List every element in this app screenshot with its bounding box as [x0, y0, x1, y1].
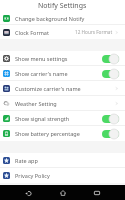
staticText: Weather Setting: [15, 100, 57, 107]
button[interactable]: Clock Format: [0, 25, 125, 39]
button[interactable]: Toggle: [102, 69, 119, 79]
staticText: 12 Hours Format: [75, 29, 113, 35]
button[interactable]: Toggle: [102, 54, 119, 64]
staticText: Customize carrier's name: [15, 85, 81, 92]
button[interactable]: Rate app: [0, 153, 125, 168]
staticText: Clock Format: [15, 29, 49, 36]
staticText: Change background Notify: [15, 15, 85, 22]
staticText: Show carrier's name: [15, 70, 68, 77]
staticText: Show battery percentage: [15, 130, 80, 137]
button[interactable]: Customize carrier's name: [0, 81, 125, 96]
button[interactable]: Weather Setting: [0, 96, 125, 111]
button[interactable]: Change background Notify: [0, 11, 125, 25]
staticText: Show menu settings: [15, 55, 68, 62]
button[interactable]: Toggle: [102, 129, 119, 139]
button[interactable]: Show menu settings: [0, 51, 125, 66]
button[interactable]: Privacy Policy: [0, 168, 125, 183]
button[interactable]: Home: [56, 186, 70, 200]
staticText: Notify Settings: [38, 1, 87, 11]
staticText: Rate app: [15, 157, 38, 164]
button[interactable]: Recents: [90, 186, 104, 200]
staticText: Show signal strength: [15, 115, 70, 122]
button[interactable]: Show signal strength: [0, 111, 125, 126]
button[interactable]: Back: [21, 186, 35, 200]
button[interactable]: Show battery percentage: [0, 126, 125, 141]
button[interactable]: Show carrier's name: [0, 66, 125, 81]
staticText: Privacy Policy: [15, 172, 50, 179]
button[interactable]: Toggle: [102, 114, 119, 124]
